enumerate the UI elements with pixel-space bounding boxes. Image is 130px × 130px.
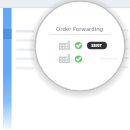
button[interactable]: Order Forwarding dashboard: [0, 0, 130, 130]
